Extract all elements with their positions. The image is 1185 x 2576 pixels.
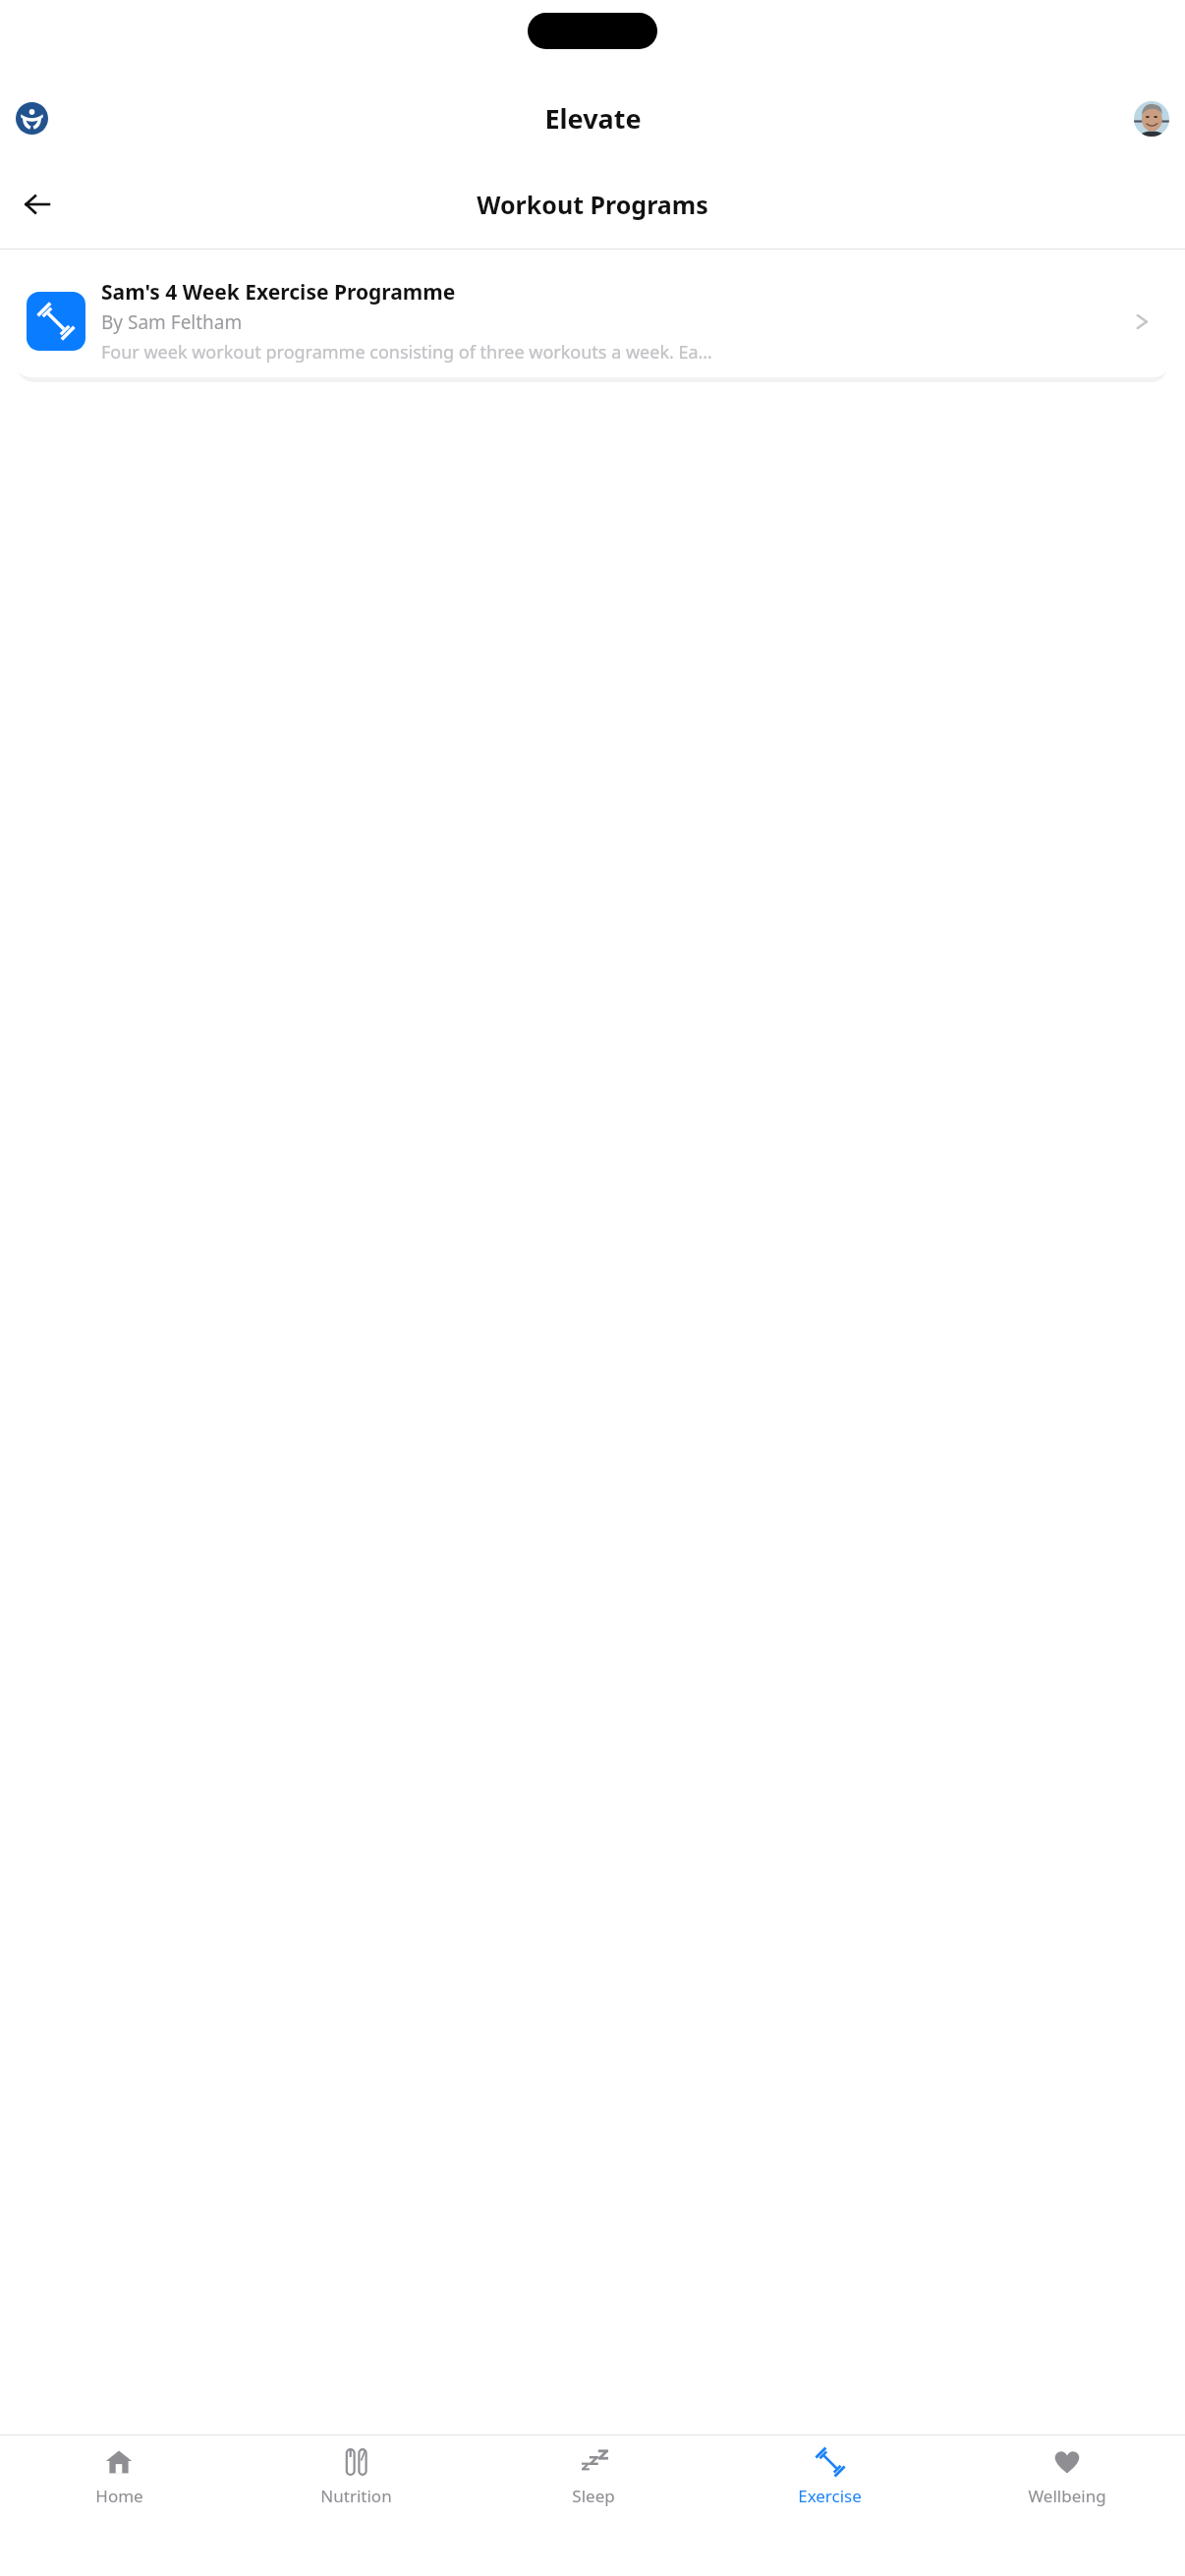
- button[interactable]: Nutrition: [238, 2436, 475, 2531]
- button[interactable]: Back: [14, 181, 61, 228]
- button[interactable]: Exercise: [711, 2436, 948, 2531]
- staticText: Exercise: [798, 2485, 862, 2507]
- button[interactable]: Home: [0, 2436, 238, 2531]
- staticText: Nutrition: [320, 2485, 392, 2507]
- staticText: By Sam Feltham: [101, 309, 243, 335]
- button[interactable]: Profile: [1134, 101, 1169, 137]
- button[interactable]: Elevate logo: [16, 102, 48, 135]
- staticText: Elevate: [544, 100, 642, 137]
- button[interactable]: Wellbeing: [948, 2436, 1185, 2531]
- button[interactable]: Sleep: [475, 2436, 711, 2531]
- staticText: Sleep: [572, 2485, 615, 2507]
- staticText: Workout Programs: [477, 188, 708, 221]
- staticText: Four week workout programme consisting o…: [101, 340, 712, 364]
- staticText: Sam's 4 Week Exercise Programme: [101, 278, 456, 307]
- staticText: Home: [95, 2485, 143, 2507]
- staticText: Wellbeing: [1028, 2485, 1106, 2507]
- button[interactable]: Sam's 4 Week Exercise Programme: [16, 265, 1169, 377]
